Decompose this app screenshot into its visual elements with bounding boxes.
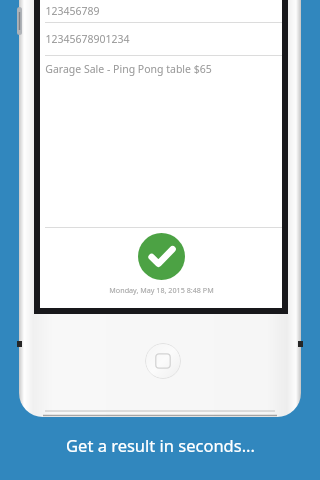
button[interactable]: Confirm <box>138 233 185 280</box>
button[interactable]: Garage Sale - Ping Pong table $65 <box>40 56 282 81</box>
staticText: Garage Sale - Ping Pong table $65 <box>45 62 212 76</box>
staticText: 123456789 <box>45 4 100 18</box>
staticText: 12345678901234 <box>45 32 130 46</box>
button[interactable]: Home <box>145 343 181 379</box>
staticText: Monday, May 18, 2015 8:48 PM <box>109 285 214 295</box>
staticText: Get a result in seconds... <box>66 434 255 456</box>
button[interactable]: 12345678901234 <box>40 23 282 55</box>
button[interactable]: 123456789 <box>40 0 282 22</box>
